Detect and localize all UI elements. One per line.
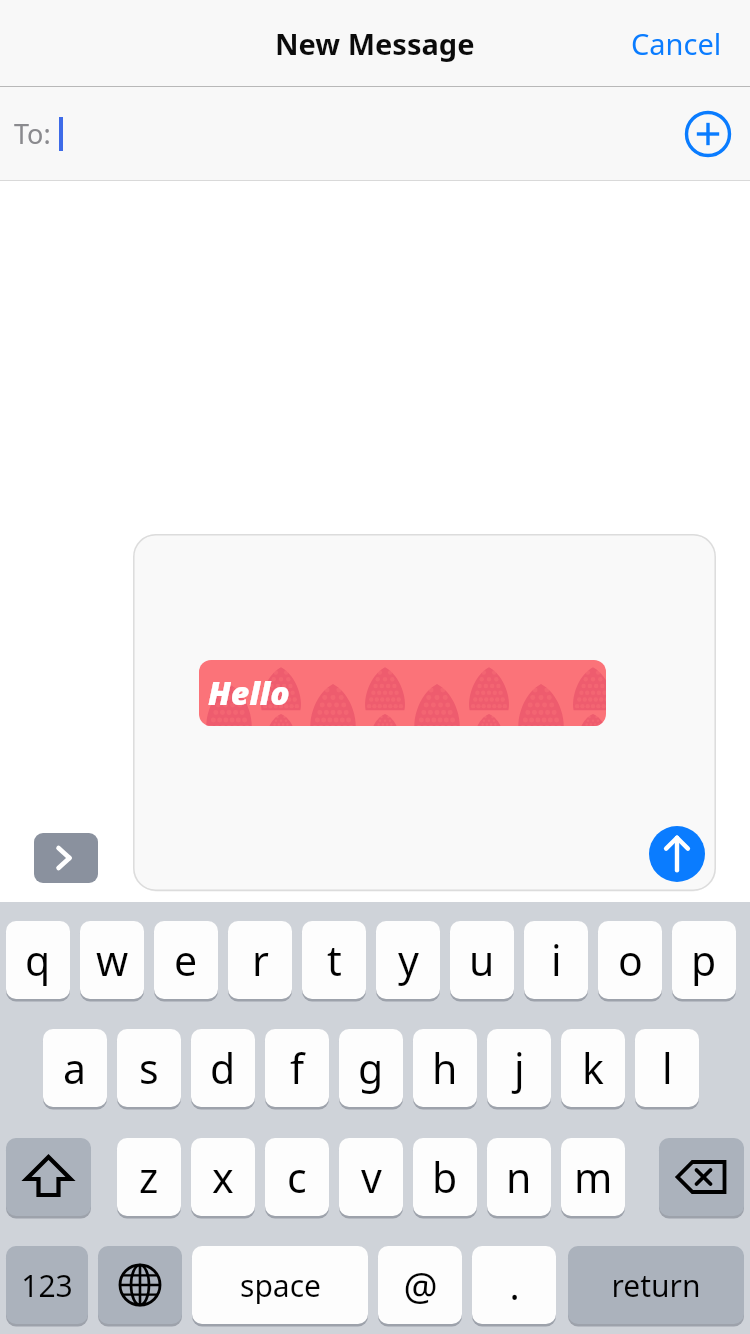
button[interactable]: g xyxy=(339,1029,403,1107)
staticText: i xyxy=(551,932,562,988)
button[interactable]: Hello xyxy=(199,660,606,726)
staticText: u xyxy=(469,932,495,988)
staticText: h xyxy=(432,1040,458,1096)
staticText: q xyxy=(25,932,51,988)
button[interactable]: @ xyxy=(378,1246,462,1324)
staticText: k xyxy=(582,1040,604,1096)
staticText: @ xyxy=(403,1259,438,1311)
button[interactable]: p xyxy=(672,921,736,999)
staticText: z xyxy=(139,1149,159,1205)
button[interactable]: v xyxy=(339,1138,403,1216)
staticText: New Message xyxy=(275,24,475,63)
button[interactable]: y xyxy=(376,921,440,999)
staticText: n xyxy=(506,1149,532,1205)
button[interactable]: i xyxy=(524,921,588,999)
staticText: y xyxy=(398,932,419,988)
staticText: g xyxy=(358,1040,384,1096)
button[interactable]: n xyxy=(487,1138,551,1216)
button[interactable]: x xyxy=(191,1138,255,1216)
button[interactable]: Backspace xyxy=(659,1138,744,1216)
staticText: a xyxy=(63,1040,87,1096)
button[interactable]: r xyxy=(228,921,292,999)
staticText: v xyxy=(361,1149,382,1205)
button[interactable]: j xyxy=(487,1029,551,1107)
staticText: e xyxy=(174,932,198,988)
button[interactable]: s xyxy=(117,1029,181,1107)
staticText: b xyxy=(432,1149,458,1205)
button[interactable]: u xyxy=(450,921,514,999)
button[interactable]: m xyxy=(561,1138,625,1216)
button[interactable]: Shift xyxy=(6,1138,91,1216)
staticText: Cancel xyxy=(631,24,722,63)
button[interactable]: Expand app drawer xyxy=(34,833,98,883)
button[interactable]: space xyxy=(192,1246,368,1324)
staticText: r xyxy=(252,932,269,988)
staticText: c xyxy=(287,1149,307,1205)
button[interactable]: l xyxy=(635,1029,699,1107)
staticText: m xyxy=(574,1149,613,1205)
staticText: d xyxy=(210,1040,236,1096)
staticText: space xyxy=(240,1265,321,1306)
button[interactable]: e xyxy=(154,921,218,999)
staticText: s xyxy=(139,1040,159,1096)
button[interactable]: c xyxy=(265,1138,329,1216)
button[interactable]: k xyxy=(561,1029,625,1107)
button[interactable]: Cancel xyxy=(625,14,728,73)
staticText: t xyxy=(327,932,342,988)
button[interactable]: t xyxy=(302,921,366,999)
staticText: w xyxy=(96,932,129,988)
staticText: 123 xyxy=(21,1265,73,1306)
staticText: f xyxy=(290,1040,305,1096)
staticText: j xyxy=(514,1040,525,1096)
button[interactable]: o xyxy=(598,921,662,999)
button[interactable]: f xyxy=(265,1029,329,1107)
button[interactable]: To: xyxy=(0,87,750,180)
button[interactable]: h xyxy=(413,1029,477,1107)
staticText: Hello xyxy=(208,671,290,715)
staticText: o xyxy=(618,932,643,988)
button[interactable]: q xyxy=(6,921,70,999)
button[interactable]: a xyxy=(43,1029,107,1107)
staticText: x xyxy=(212,1149,234,1205)
staticText: p xyxy=(691,932,717,988)
button[interactable]: return xyxy=(568,1246,744,1324)
button[interactable]: Switch keyboard xyxy=(98,1246,182,1324)
staticText: . xyxy=(509,1259,520,1311)
button[interactable]: Send xyxy=(649,826,705,882)
staticText: return xyxy=(611,1265,701,1306)
button[interactable]: z xyxy=(117,1138,181,1216)
button[interactable]: w xyxy=(80,921,144,999)
button[interactable]: b xyxy=(413,1138,477,1216)
button[interactable]: 123 xyxy=(6,1246,88,1324)
staticText: l xyxy=(662,1040,673,1096)
button[interactable]: . xyxy=(472,1246,556,1324)
button[interactable]: Add contact xyxy=(684,110,732,158)
staticText: To: xyxy=(14,115,51,152)
button[interactable]: d xyxy=(191,1029,255,1107)
